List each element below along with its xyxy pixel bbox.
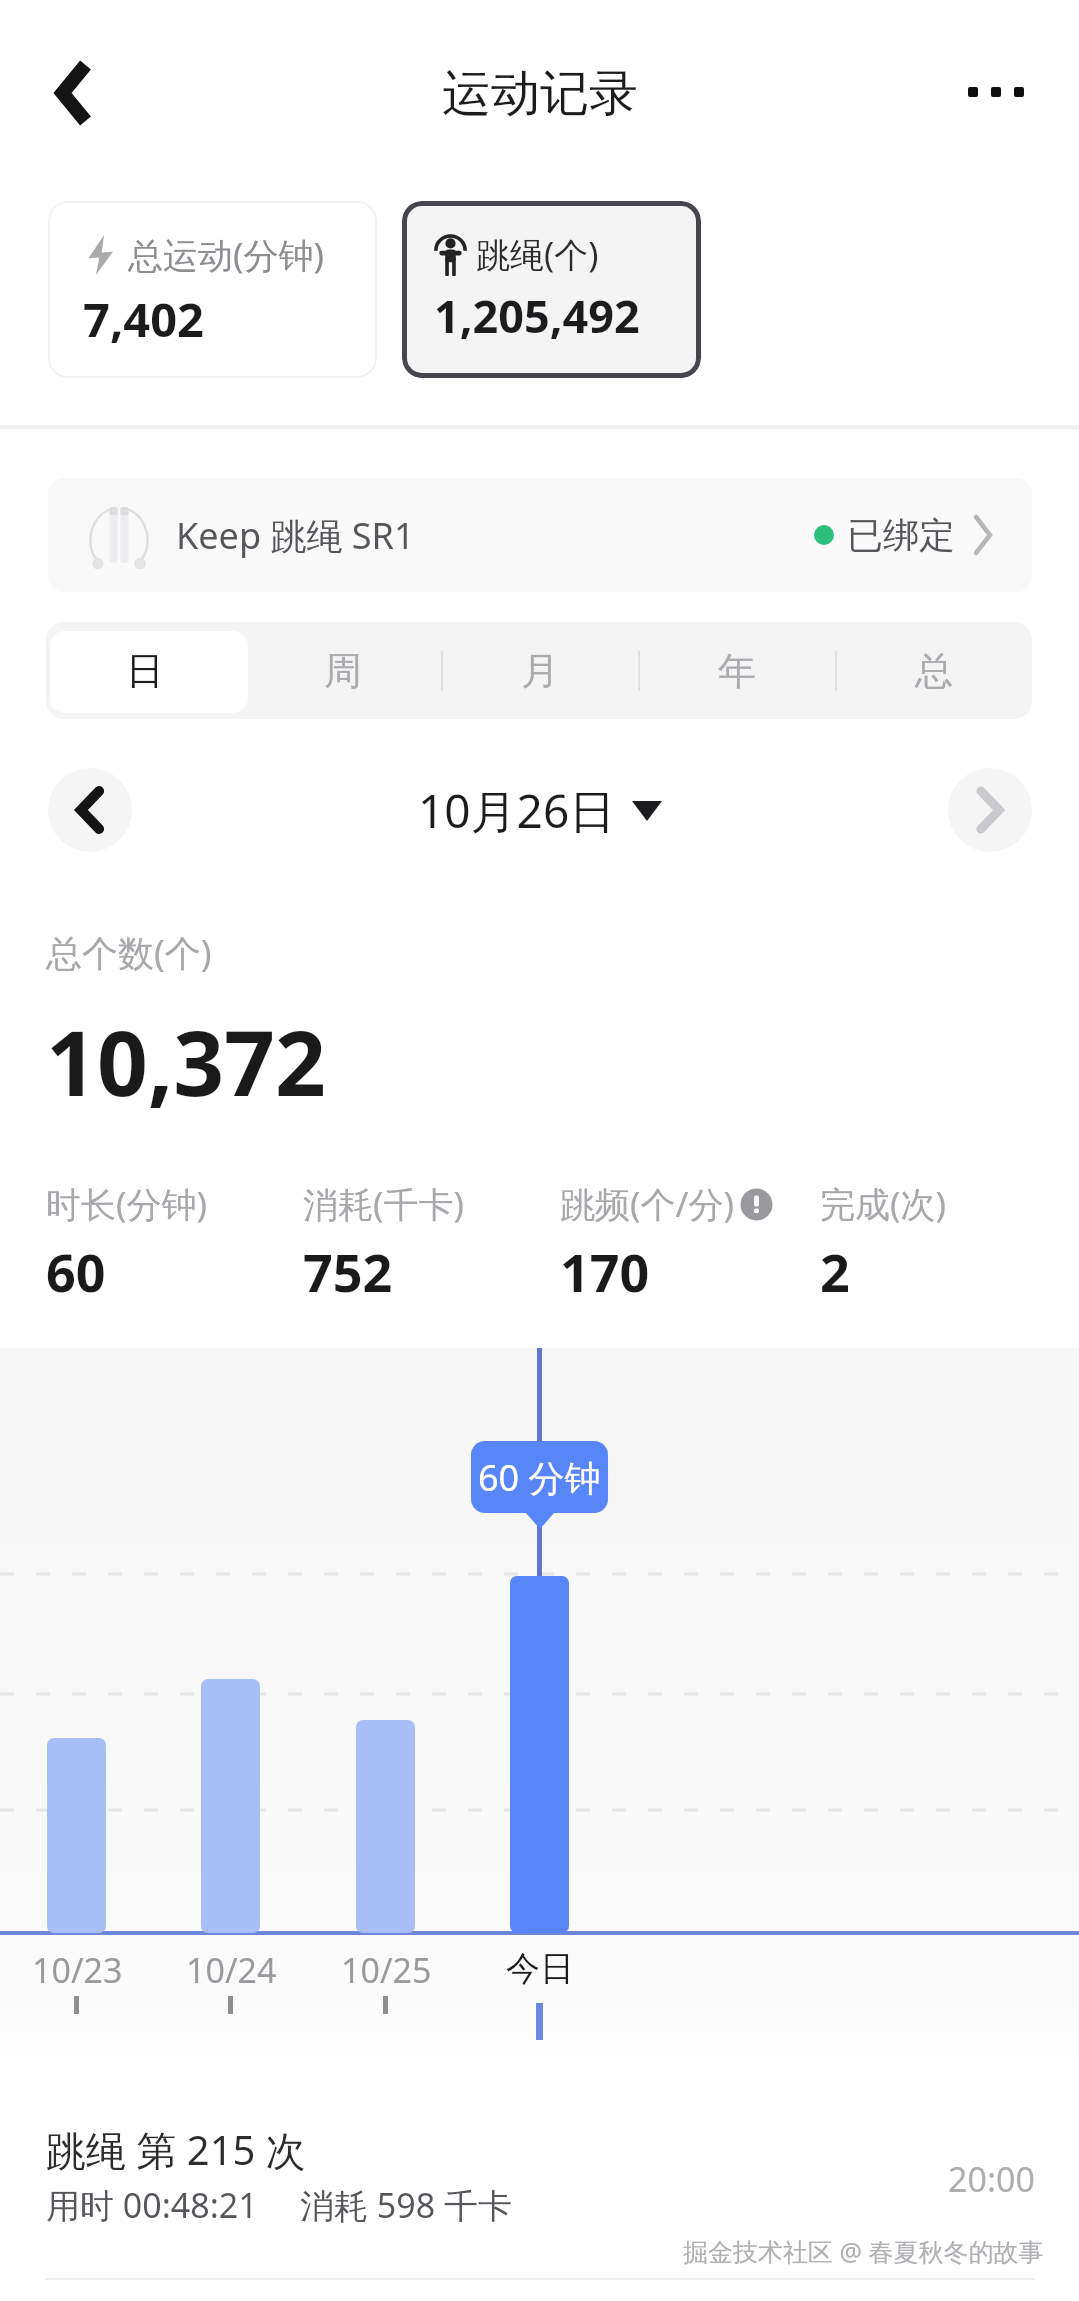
- staticText: 用时 00:48:21: [46, 2182, 258, 2228]
- staticText: 10月26日: [418, 779, 616, 842]
- staticText: 跳绳 第 215 次: [46, 2122, 306, 2177]
- staticText: 10,372: [46, 1001, 326, 1122]
- staticText: 跳频(个/分): [560, 1180, 735, 1228]
- button[interactable]: 日: [46, 622, 244, 719]
- button[interactable]: Keep 跳绳 SR1: [48, 478, 1032, 592]
- button[interactable]: Next day: [948, 768, 1032, 852]
- staticText: 7,402: [83, 287, 204, 351]
- button[interactable]: 跳绳 第 215 次: [0, 2110, 1079, 2275]
- button[interactable]: Previous day: [48, 768, 132, 852]
- staticText: Keep 跳绳 SR1: [176, 511, 415, 560]
- button[interactable]: 总: [835, 622, 1032, 719]
- staticText: 10/25: [341, 1947, 432, 1993]
- staticText: 752: [303, 1236, 393, 1307]
- staticText: 10/23: [32, 1947, 123, 1993]
- button[interactable]: 跳绳(个): [402, 201, 701, 378]
- button[interactable]: 月: [441, 622, 638, 719]
- button[interactable]: More options: [946, 48, 1046, 136]
- staticText: 60: [46, 1236, 106, 1307]
- staticText: 今日: [506, 1947, 574, 1990]
- staticText: 总个数(个): [46, 928, 212, 977]
- button[interactable]: 年: [638, 622, 835, 719]
- button[interactable]: Back: [29, 48, 119, 138]
- staticText: 日: [126, 647, 164, 695]
- staticText: 时长(分钟): [46, 1180, 208, 1228]
- staticText: 1,205,492: [434, 285, 640, 346]
- staticText: 总运动(分钟): [128, 231, 325, 279]
- staticText: 消耗 598 千卡: [300, 2182, 513, 2228]
- staticText: 170: [560, 1236, 650, 1307]
- staticText: 2: [820, 1236, 850, 1307]
- button[interactable]: 周: [244, 622, 441, 719]
- staticText: 月: [521, 647, 559, 695]
- staticText: 掘金技术社区 @ 春夏秋冬的故事: [683, 2234, 1044, 2268]
- staticText: 60 分钟: [478, 1453, 601, 1502]
- button[interactable]: 总运动(分钟): [48, 201, 377, 378]
- staticText: 消耗(千卡): [303, 1180, 465, 1228]
- staticText: 运动记录: [442, 63, 638, 125]
- staticText: 10/24: [186, 1947, 277, 1993]
- staticText: 跳绳(个): [476, 231, 599, 277]
- staticText: 完成(次): [820, 1180, 947, 1228]
- staticText: 20:00: [948, 2156, 1035, 2202]
- button[interactable]: 10月26日: [410, 773, 670, 848]
- staticText: 周: [324, 647, 362, 695]
- staticText: 已绑定: [847, 513, 955, 558]
- staticText: 总: [915, 647, 953, 695]
- staticText: 年: [718, 647, 756, 695]
